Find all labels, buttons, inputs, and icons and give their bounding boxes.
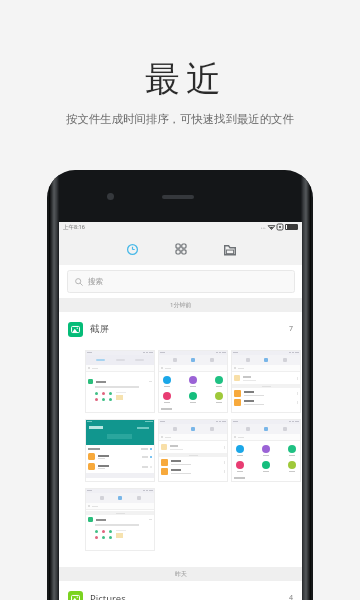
button[interactable]: Screenshot <box>85 488 155 551</box>
staticText: 上午8:16 <box>63 223 85 231</box>
staticText: 7 <box>289 324 294 334</box>
staticText: 搜索 <box>88 277 103 286</box>
button[interactable]: Screenshot <box>231 419 301 482</box>
button[interactable]: 截屏 <box>59 312 302 346</box>
button[interactable]: Screenshot <box>85 419 155 482</box>
staticText: 1分钟前 <box>170 301 192 309</box>
staticText: 最近 <box>142 57 224 101</box>
button[interactable]: Pictures <box>59 581 302 600</box>
button[interactable]: Categories <box>171 239 191 259</box>
staticText: 4 <box>289 593 294 600</box>
button[interactable]: Screenshot <box>231 350 301 413</box>
button[interactable]: Screenshot <box>85 350 155 413</box>
staticText: 按文件生成时间排序，可快速找到最近的文件 <box>66 112 294 126</box>
button[interactable]: Screenshot <box>158 350 228 413</box>
button[interactable]: Screenshot <box>158 419 228 482</box>
button[interactable]: Files <box>220 239 240 259</box>
button[interactable]: 搜索 <box>67 270 295 293</box>
staticText: 昨天 <box>175 570 187 578</box>
button[interactable]: Recent <box>122 239 142 259</box>
staticText: Pictures <box>90 592 126 600</box>
staticText: 截屏 <box>90 323 109 335</box>
